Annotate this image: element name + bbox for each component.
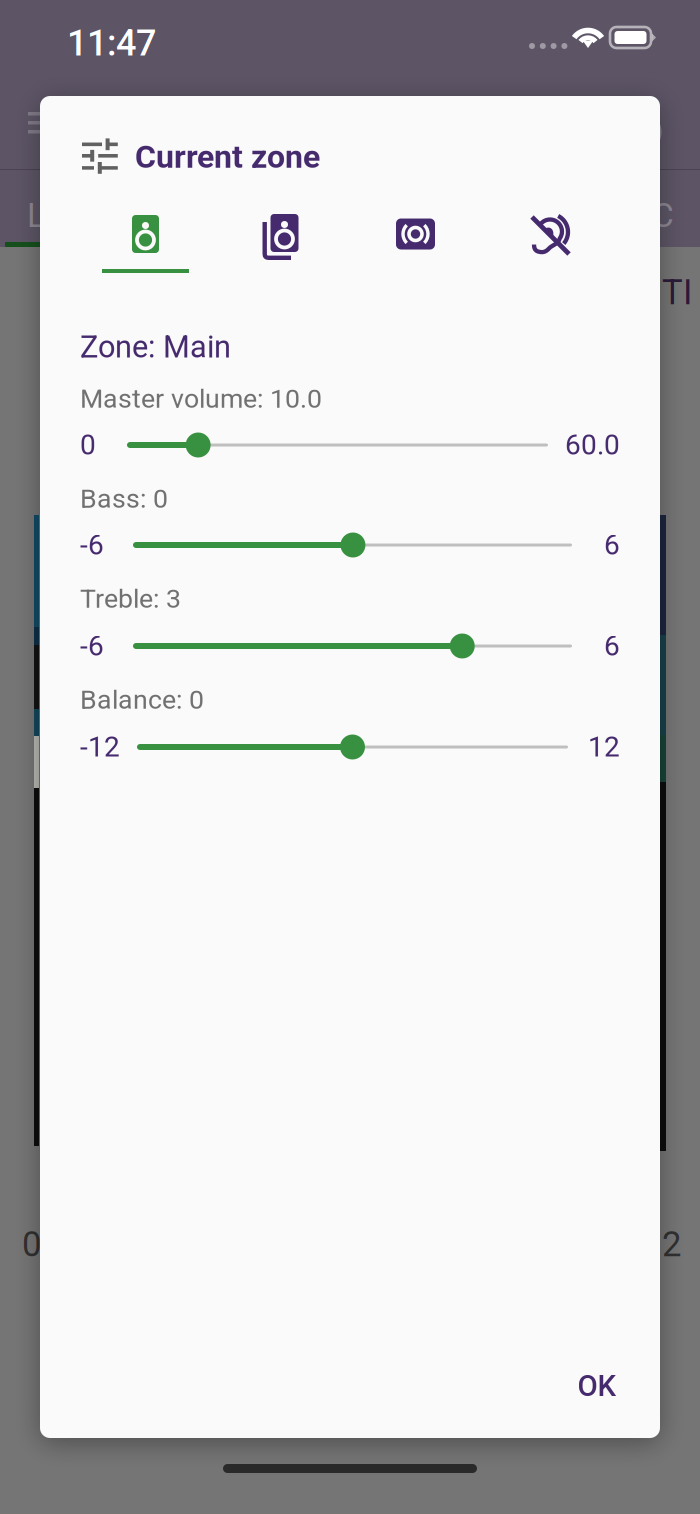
- staticText: -6: [80, 630, 104, 662]
- staticText: 0: [80, 429, 96, 461]
- button[interactable]: OK: [552, 1358, 642, 1414]
- staticText: -6: [80, 529, 104, 561]
- staticText: TI: [662, 272, 692, 313]
- button[interactable]: Speaker group zone: [213, 204, 348, 284]
- staticText: Master volume: 10.0: [80, 383, 322, 414]
- staticText: 60.0: [565, 429, 620, 461]
- button[interactable]: Single speaker zone: [78, 204, 213, 284]
- staticText: Balance: 0: [80, 684, 204, 715]
- button[interactable]: Hearing off zone: [483, 204, 618, 284]
- staticText: Current zone: [135, 138, 320, 175]
- staticText: 12: [588, 731, 620, 763]
- staticText: 0: [22, 1224, 41, 1265]
- staticText: 11:47: [67, 22, 156, 64]
- staticText: -12: [80, 731, 120, 763]
- staticText: 6: [604, 630, 620, 662]
- staticText: C: [652, 196, 674, 235]
- staticText: Bass: 0: [80, 483, 168, 514]
- button[interactable]: Surround zone: [348, 204, 483, 284]
- staticText: L: [27, 196, 45, 235]
- staticText: Treble: 3: [80, 583, 181, 614]
- staticText: 6: [604, 529, 620, 561]
- staticText: OK: [577, 1369, 616, 1403]
- staticText: Zone: Main: [80, 329, 231, 365]
- staticText: 2: [662, 1224, 681, 1265]
